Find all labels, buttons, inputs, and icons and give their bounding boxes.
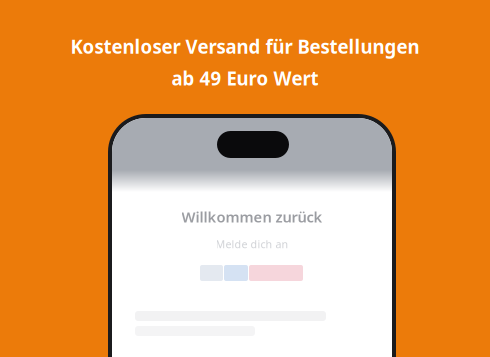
staticText: Melde dich an [215,237,288,251]
staticText: Willkommen zurück [181,207,322,226]
staticText: Kostenloser Versand für Bestellungen [70,34,419,59]
staticText: ab 49 Euro Wert [171,66,318,91]
button[interactable]: Mit Facebook anmelden [224,265,248,281]
